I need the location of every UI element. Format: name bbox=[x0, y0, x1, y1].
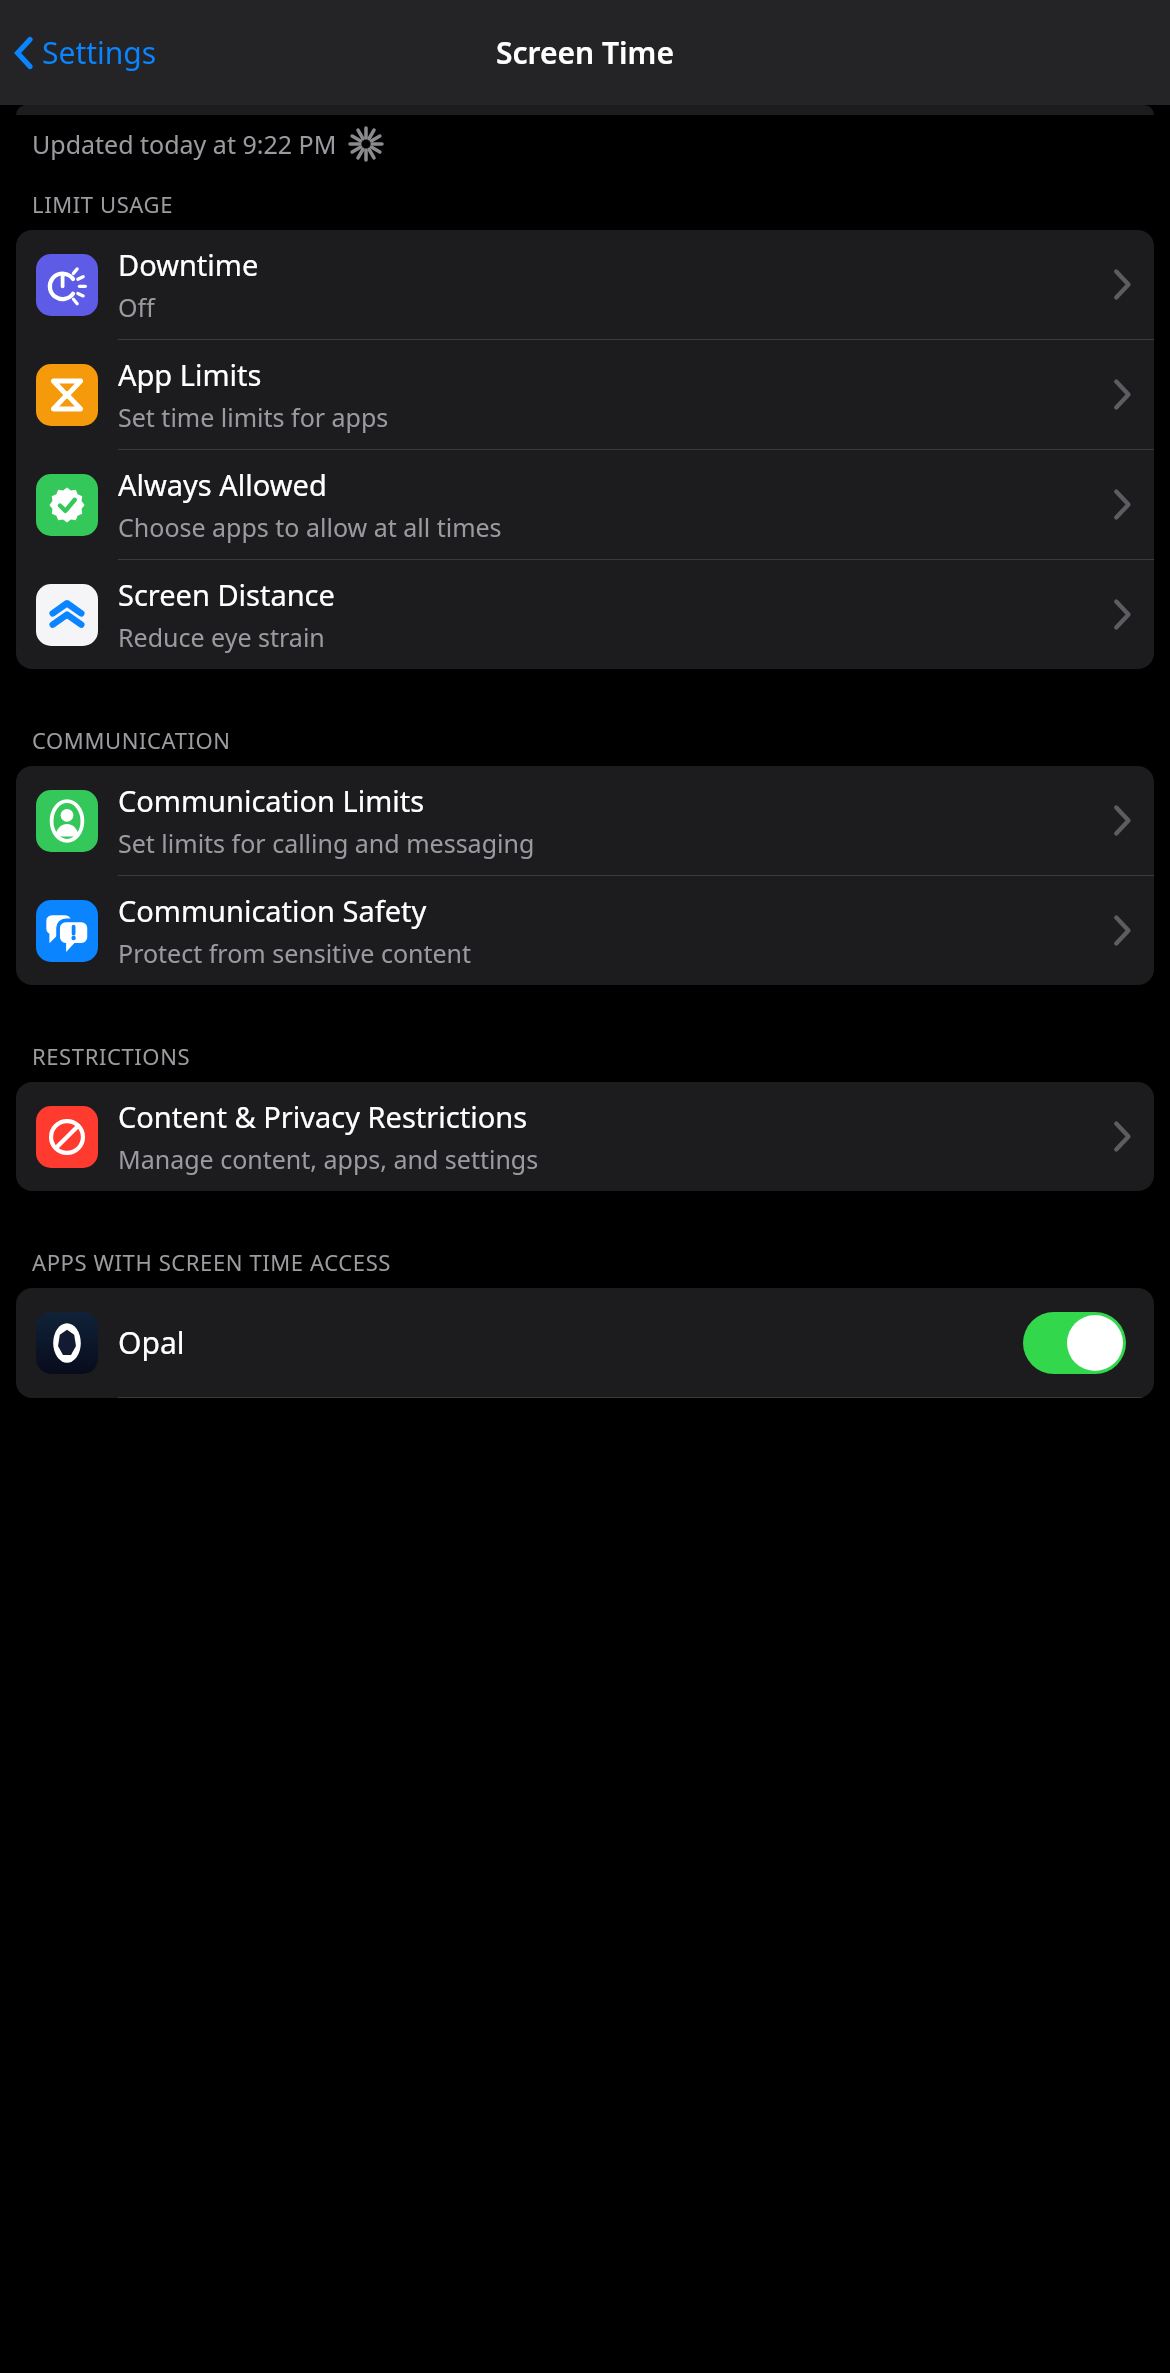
staticText: COMMUNICATION bbox=[32, 725, 231, 755]
staticText: Manage content, apps, and settings bbox=[118, 1142, 539, 1176]
button[interactable]: Opal bbox=[16, 1288, 1154, 1398]
staticText: LIMIT USAGE bbox=[32, 189, 173, 219]
staticText: Downtime bbox=[118, 245, 259, 284]
staticText: Protect from sensitive content bbox=[118, 936, 472, 970]
button[interactable]: Always Allowed bbox=[16, 450, 1154, 560]
button[interactable]: Content & Privacy Restrictions bbox=[16, 1082, 1154, 1191]
other: Open bbox=[1113, 599, 1131, 630]
staticText: Opal bbox=[118, 1322, 1023, 1363]
other: Open bbox=[1113, 805, 1131, 836]
button[interactable]: Toggle Opal Screen Time access bbox=[1023, 1312, 1126, 1374]
button[interactable]: Communication Limits bbox=[16, 766, 1154, 876]
staticText: Settings bbox=[42, 32, 157, 73]
other: Open bbox=[1113, 915, 1131, 946]
other: Open bbox=[1113, 1121, 1131, 1152]
button[interactable]: App Limits bbox=[16, 340, 1154, 450]
other: Open bbox=[1113, 379, 1131, 410]
staticText: Always Allowed bbox=[118, 465, 327, 504]
staticText: Set time limits for apps bbox=[118, 400, 389, 434]
staticText: Communication Safety bbox=[118, 891, 427, 930]
button[interactable]: Communication Safety bbox=[16, 876, 1154, 985]
other: Open bbox=[1113, 269, 1131, 300]
other: Open bbox=[1113, 489, 1131, 520]
staticText: APPS WITH SCREEN TIME ACCESS bbox=[32, 1247, 391, 1277]
staticText: Off bbox=[118, 290, 155, 324]
staticText: Communication Limits bbox=[118, 781, 425, 820]
staticText: Content & Privacy Restrictions bbox=[118, 1097, 528, 1136]
staticText: Choose apps to allow at all times bbox=[118, 510, 502, 544]
staticText: Updated today at 9:22 PM bbox=[32, 127, 337, 161]
button[interactable]: Settings bbox=[8, 24, 163, 81]
staticText: Set limits for calling and messaging bbox=[118, 826, 535, 860]
button[interactable]: Screen Distance bbox=[16, 560, 1154, 669]
staticText: App Limits bbox=[118, 355, 262, 394]
staticText: Reduce eye strain bbox=[118, 620, 325, 654]
staticText: Screen Distance bbox=[118, 575, 335, 614]
button[interactable]: Downtime bbox=[16, 230, 1154, 340]
staticText: Screen Time bbox=[496, 32, 674, 73]
staticText: RESTRICTIONS bbox=[32, 1041, 191, 1071]
